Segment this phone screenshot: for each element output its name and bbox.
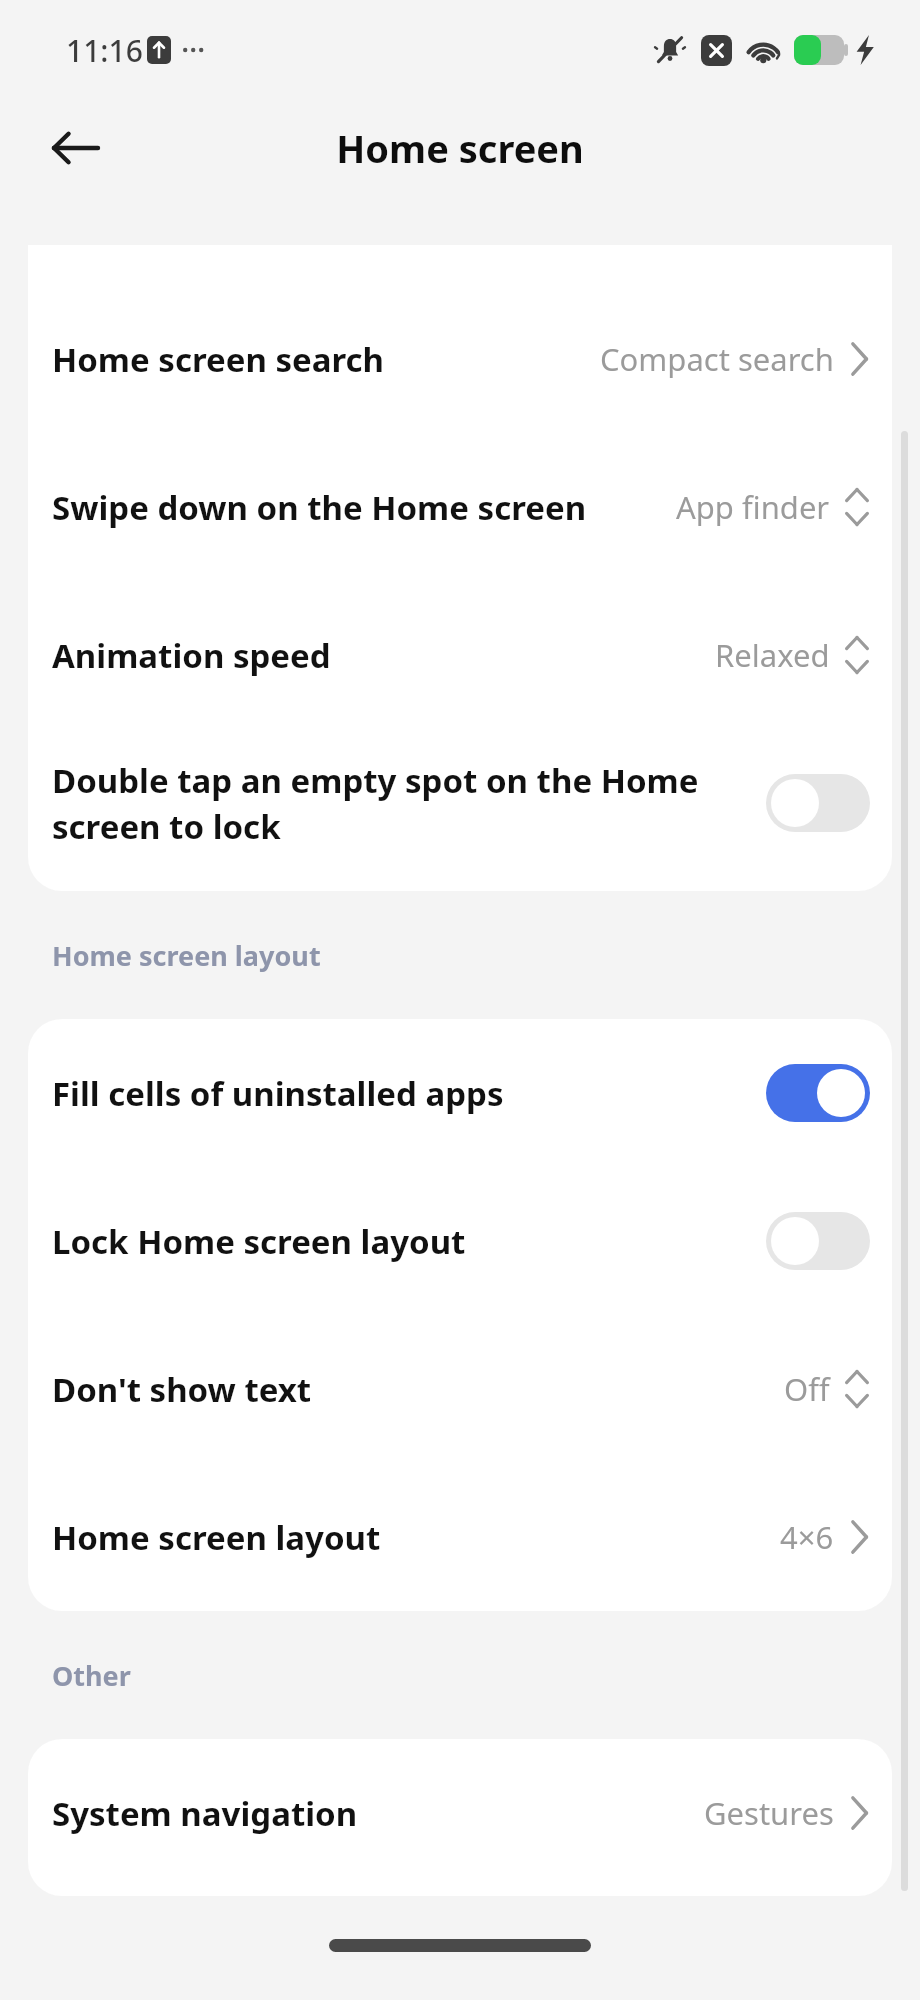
staticText: Home screen search	[52, 337, 584, 382]
button[interactable]: Home screen layout	[28, 1463, 892, 1611]
button[interactable]: System navigation	[28, 1739, 892, 1887]
staticText: Fill cells of uninstalled apps	[52, 1071, 750, 1116]
staticText: Gestures	[704, 1792, 834, 1834]
button[interactable]: Toggle on	[766, 1064, 870, 1122]
staticText: Other	[52, 1657, 131, 1694]
staticText: Compact search	[600, 338, 834, 380]
button[interactable]: Double tap an empty spot on the Home scr…	[28, 729, 892, 877]
staticText: Don't show text	[52, 1367, 768, 1412]
button[interactable]: Don't show text	[28, 1315, 892, 1463]
staticText: Animation speed	[52, 633, 699, 678]
staticText: Swipe down on the Home screen	[52, 485, 660, 530]
staticText: Relaxed	[715, 634, 830, 676]
button[interactable]: Swipe down on the Home screen	[28, 433, 892, 581]
button[interactable]: Toggle off	[766, 774, 870, 832]
button[interactable]: Animation speed	[28, 581, 892, 729]
button[interactable]: Home screen search	[28, 285, 892, 433]
staticText: Lock Home screen layout	[52, 1219, 750, 1264]
staticText: Off	[784, 1368, 830, 1410]
staticText: Home screen layout	[52, 1515, 764, 1560]
staticText: Home screen	[336, 122, 584, 174]
staticText: 4×6	[780, 1516, 834, 1558]
staticText: 11:16	[66, 30, 143, 71]
staticText: System navigation	[52, 1791, 688, 1836]
button[interactable]: Toggle off	[766, 1212, 870, 1270]
button[interactable]: Fill cells of uninstalled apps	[28, 1019, 892, 1167]
staticText: Double tap an empty spot on the Home scr…	[52, 758, 750, 849]
staticText: Home screen layout	[52, 937, 321, 974]
button[interactable]: Back	[40, 113, 110, 183]
staticText: App finder	[676, 486, 830, 528]
button[interactable]: Lock Home screen layout	[28, 1167, 892, 1315]
